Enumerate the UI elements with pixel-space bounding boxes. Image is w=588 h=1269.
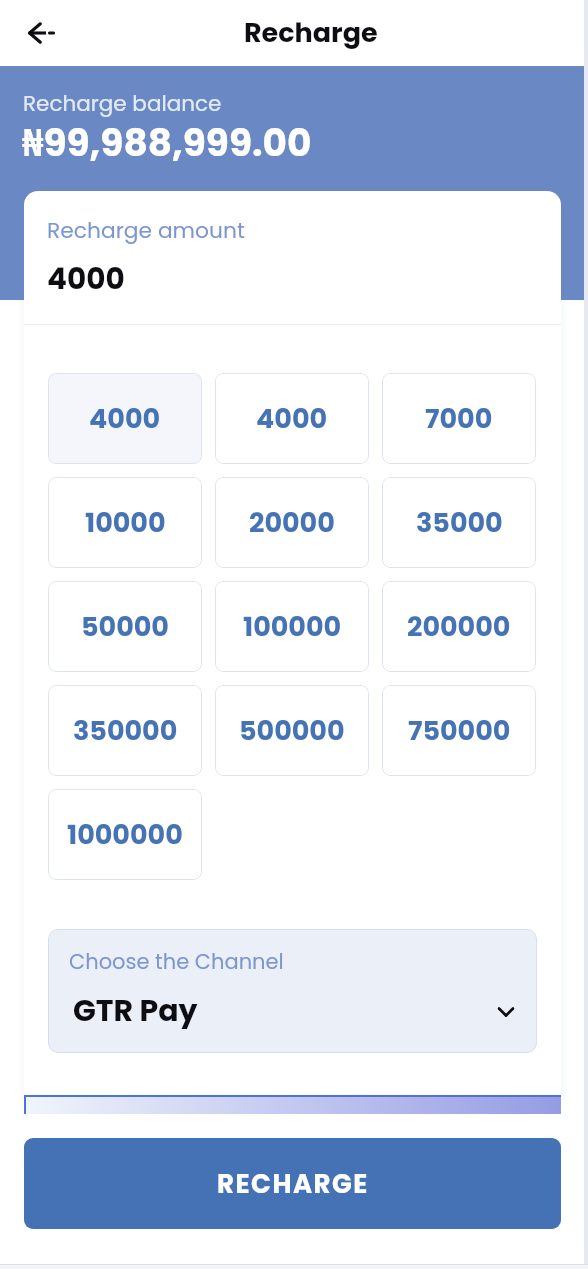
staticText: 200000 [407, 608, 511, 646]
staticText: 500000 [239, 712, 345, 750]
button[interactable]: Back [18, 9, 66, 57]
button[interactable]: 4000 [48, 373, 202, 464]
button[interactable]: 100000 [215, 581, 369, 672]
staticText: 50000 [81, 608, 169, 646]
staticText: GTR Pay [73, 990, 198, 1032]
button[interactable]: 350000 [48, 685, 202, 776]
button[interactable]: RECHARGE [24, 1138, 561, 1229]
staticText: Recharge [244, 14, 378, 52]
button[interactable]: 10000 [48, 477, 202, 568]
staticText: 1000000 [67, 816, 183, 854]
button[interactable]: 50000 [48, 581, 202, 672]
staticText: 4000 [89, 400, 161, 438]
button[interactable]: 4000 [215, 373, 369, 464]
button[interactable]: 1000000 [48, 789, 202, 880]
staticText: 4000 [256, 400, 328, 438]
button[interactable]: 500000 [215, 685, 369, 776]
staticText: 20000 [249, 504, 335, 542]
button[interactable]: 35000 [382, 477, 536, 568]
staticText: Recharge amount [47, 215, 245, 246]
button[interactable]: 7000 [382, 373, 536, 464]
staticText: 7000 [425, 400, 493, 438]
staticText: 350000 [73, 712, 178, 750]
staticText: Recharge balance [23, 88, 222, 118]
staticText: 35000 [416, 504, 503, 542]
staticText: 100000 [243, 608, 342, 646]
button[interactable]: Choose the Channel [48, 929, 537, 1053]
staticText: Choose the Channel [69, 947, 284, 976]
staticText: ₦99,988,999.00 [22, 116, 312, 169]
staticText: RECHARGE [217, 1166, 369, 1202]
button[interactable]: 20000 [215, 477, 369, 568]
staticText: 750000 [408, 712, 511, 750]
button[interactable]: 750000 [382, 685, 536, 776]
staticText: 4000 [47, 258, 125, 299]
staticText: 10000 [85, 504, 166, 542]
button[interactable]: 200000 [382, 581, 536, 672]
